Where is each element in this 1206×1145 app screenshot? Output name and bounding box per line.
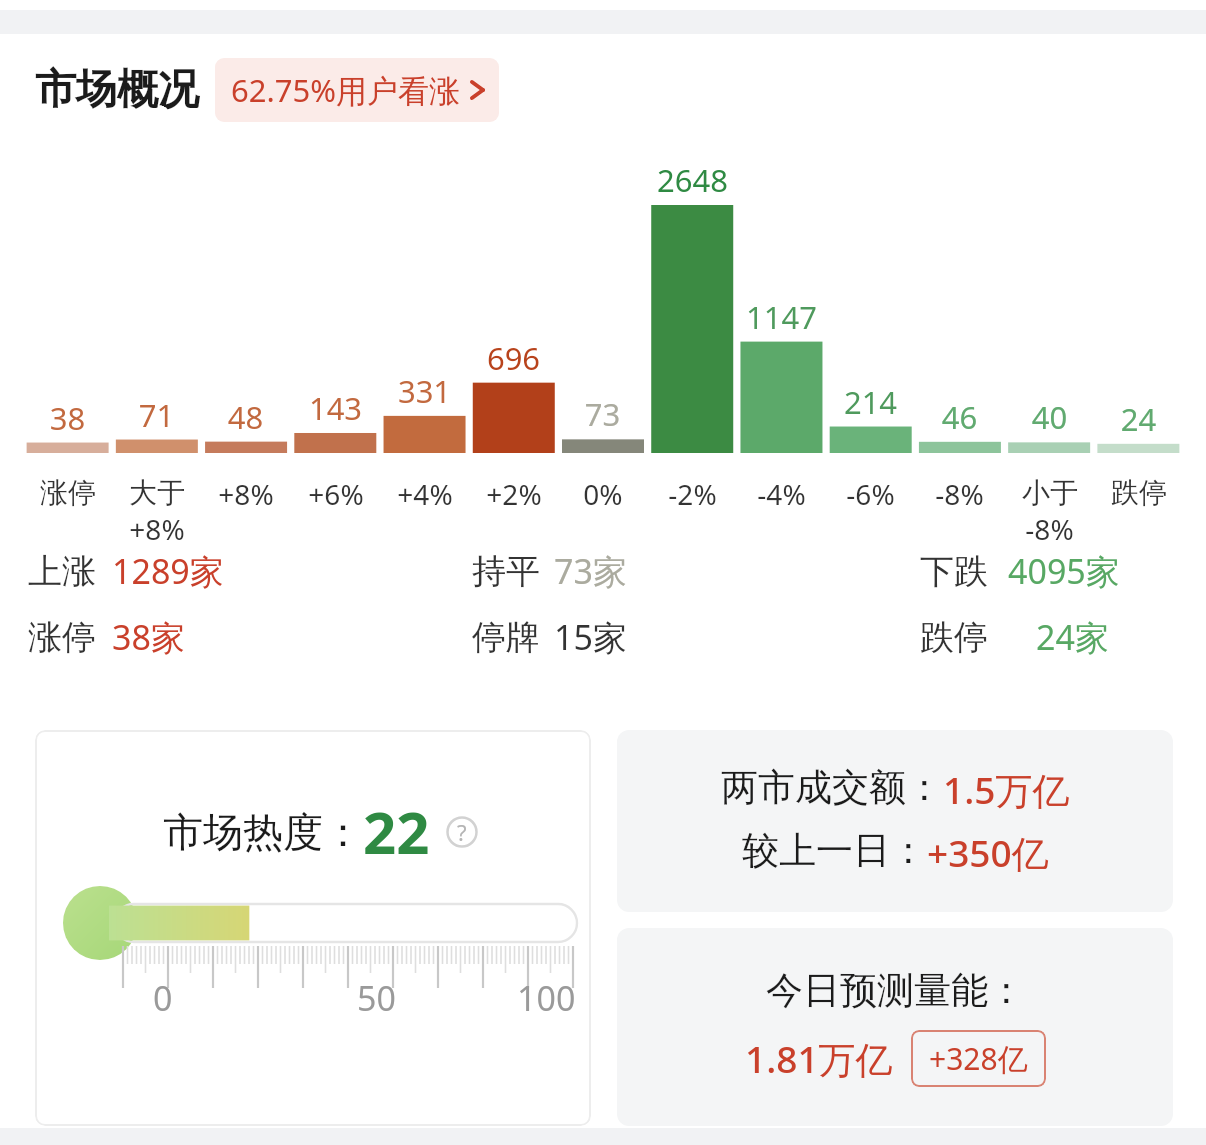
staticText: 0 [153, 975, 173, 1021]
staticText: 46 [915, 396, 1004, 438]
staticText: +328亿 [929, 1038, 1028, 1079]
staticText: 大于 [129, 475, 185, 510]
staticText: -2% [668, 475, 717, 513]
staticText: 下跌 [920, 550, 988, 593]
staticText: 15家 [554, 614, 627, 660]
staticText: 40 [1005, 396, 1094, 438]
button[interactable]: +328亿 [911, 1030, 1046, 1087]
staticText: +8% [129, 510, 185, 548]
button[interactable]: 热度说明 [446, 816, 478, 848]
staticText: -6% [846, 475, 895, 513]
staticText: 较上一日： [742, 827, 927, 874]
staticText: 涨停 [28, 616, 96, 659]
staticText: 62.75%用户看涨 [231, 69, 460, 111]
staticText: 涨停 [40, 475, 96, 510]
staticText: 小于 [1022, 475, 1078, 510]
other: 查看详情 [470, 77, 485, 103]
staticText: -8% [1025, 510, 1074, 548]
staticText: 331 [380, 370, 469, 412]
staticText: 24家 [1036, 614, 1109, 660]
staticText: 停牌 [472, 616, 540, 659]
staticText: 73 [558, 393, 647, 435]
staticText: 市场概况 [35, 64, 199, 116]
staticText: -4% [757, 475, 806, 513]
button[interactable]: 62.75%用户看涨 [215, 58, 499, 122]
staticText: 上涨 [28, 550, 96, 593]
staticText: 跌停 [920, 616, 988, 659]
staticText: +2% [486, 475, 542, 513]
staticText: 今日预测量能： [766, 967, 1025, 1014]
staticText: ? [457, 817, 467, 847]
staticText: 两市成交额： [721, 764, 943, 811]
button[interactable]: 今日预测量能： [617, 928, 1173, 1126]
staticText: +6% [308, 475, 364, 513]
staticText: +4% [397, 475, 453, 513]
staticText: 73家 [554, 548, 627, 594]
button[interactable]: 两市成交额： [617, 730, 1173, 912]
staticText: +350亿 [927, 827, 1049, 878]
staticText: 4095家 [1008, 548, 1120, 594]
staticText: 1289家 [112, 548, 224, 594]
staticText: 1147 [737, 296, 826, 338]
staticText: 市场热度： [163, 807, 363, 857]
staticText: 持平 [472, 550, 540, 593]
staticText: 48 [201, 396, 290, 438]
staticText: 214 [826, 381, 915, 423]
staticText: 71 [112, 394, 201, 436]
staticText: 1.81万亿 [745, 1033, 893, 1084]
staticText: +8% [218, 475, 274, 513]
staticText: 0% [583, 475, 623, 513]
staticText: 50 [357, 975, 396, 1021]
staticText: 143 [291, 387, 380, 429]
staticText: 100 [517, 975, 576, 1021]
staticText: -8% [935, 475, 984, 513]
staticText: 38 [23, 397, 112, 439]
button[interactable]: 市场热度： [35, 730, 591, 1126]
staticText: 22 [363, 792, 430, 871]
staticText: 24 [1094, 398, 1183, 440]
staticText: 1.5万亿 [943, 764, 1070, 815]
staticText: 38家 [112, 614, 185, 660]
staticText: 2648 [648, 159, 737, 201]
staticText: 696 [469, 337, 558, 379]
staticText: 跌停 [1111, 475, 1167, 510]
